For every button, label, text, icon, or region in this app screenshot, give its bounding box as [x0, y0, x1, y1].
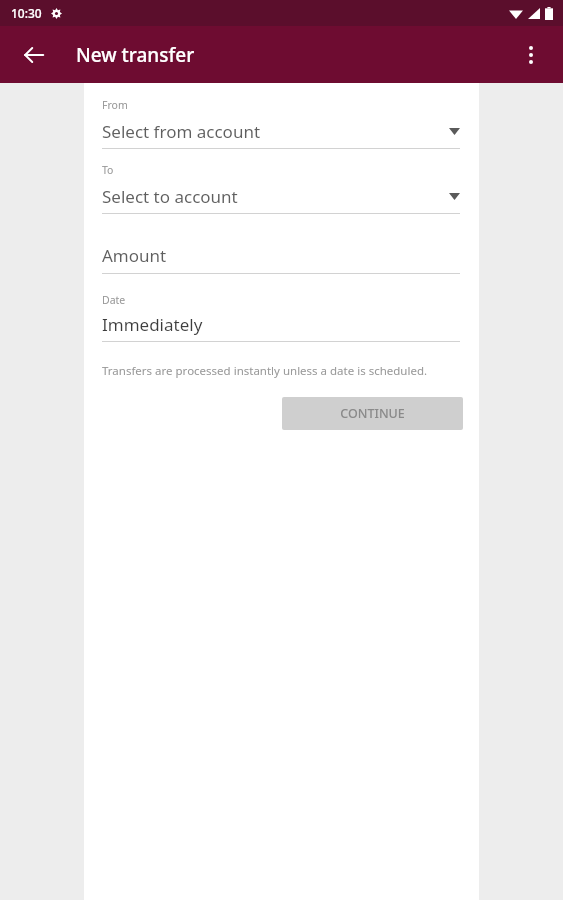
- button[interactable]: CONTINUE: [282, 397, 463, 430]
- button[interactable]: Date: [84, 293, 479, 342]
- button[interactable]: Amount: [84, 244, 479, 274]
- button[interactable]: More options: [509, 33, 553, 77]
- staticText: Select to account: [102, 185, 449, 208]
- staticText: 10:30: [11, 5, 42, 21]
- staticText: Date: [102, 293, 126, 307]
- staticText: To: [102, 163, 114, 177]
- staticText: Immediately: [102, 313, 203, 336]
- staticText: New transfer: [76, 42, 195, 68]
- staticText: CONTINUE: [340, 405, 405, 422]
- button[interactable]: From: [84, 98, 479, 149]
- staticText: From: [102, 98, 128, 112]
- staticText: Select from account: [102, 120, 449, 143]
- button[interactable]: To: [84, 163, 479, 214]
- staticText: Amount: [102, 244, 167, 267]
- staticText: Transfers are processed instantly unless…: [102, 363, 428, 379]
- button[interactable]: Back: [12, 33, 56, 77]
